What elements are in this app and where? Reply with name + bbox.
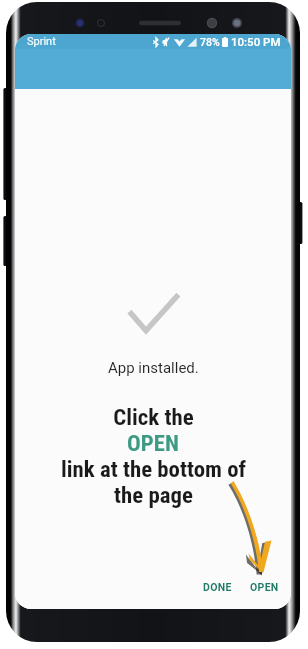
staticText: OPEN <box>127 430 179 456</box>
button[interactable]: DONE <box>196 576 239 598</box>
staticText: App installed. <box>108 359 199 377</box>
button[interactable]: OPEN <box>243 576 286 598</box>
staticText: DONE <box>203 581 232 593</box>
staticText: OPEN <box>250 581 279 593</box>
staticText: 78% <box>200 36 220 48</box>
staticText: Sprint <box>27 35 56 48</box>
staticText: the page <box>114 482 193 508</box>
staticText: link at the bottom of <box>61 456 246 482</box>
staticText: Click the <box>113 404 194 430</box>
staticText: 10:50 PM <box>231 35 281 48</box>
